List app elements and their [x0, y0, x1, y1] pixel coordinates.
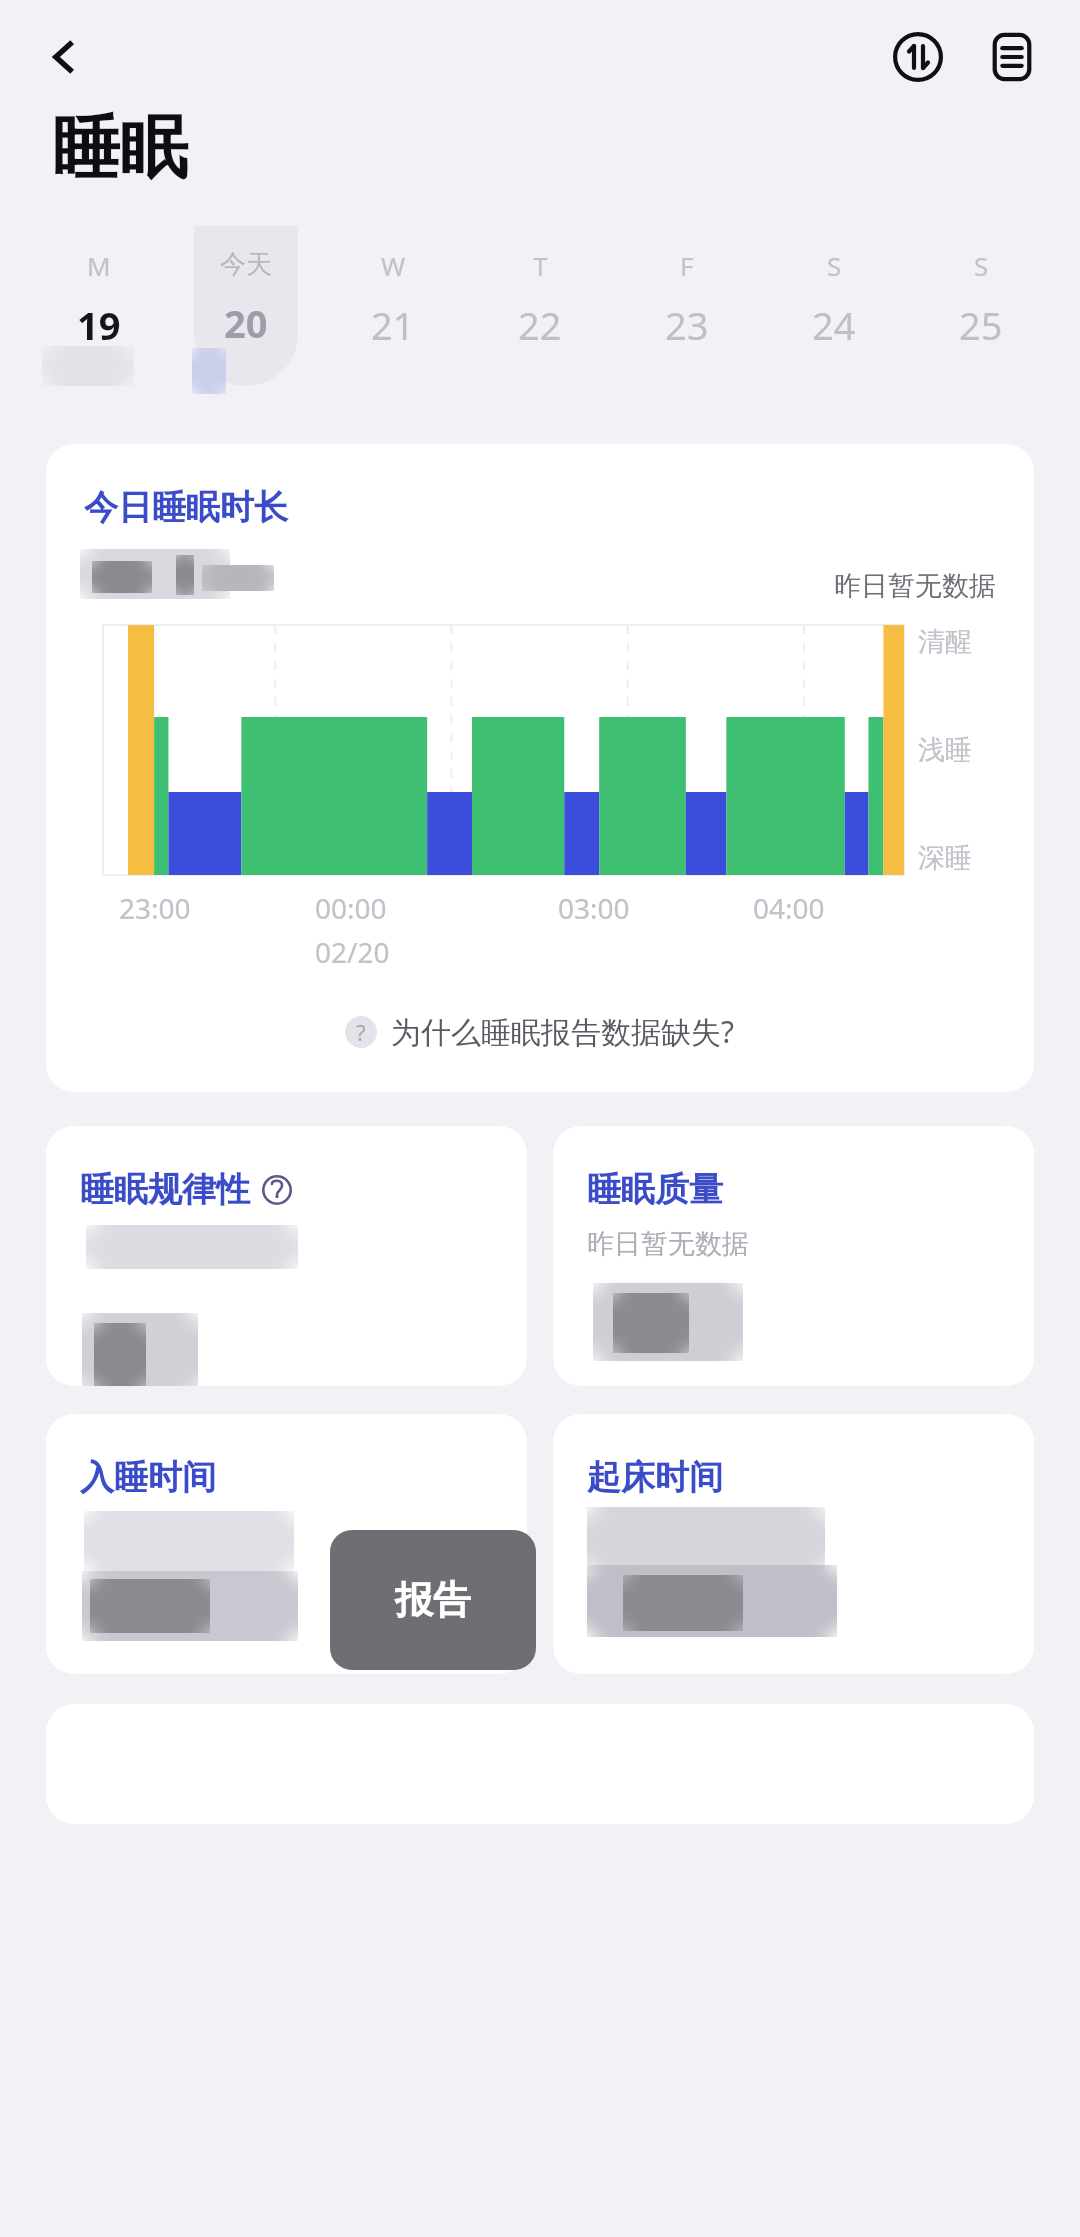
- staticText: 02/20: [315, 933, 390, 971]
- staticText: 今天: [220, 248, 272, 281]
- staticText: 浅睡: [918, 733, 972, 767]
- staticText: 04:00: [753, 889, 825, 927]
- button[interactable]: 入睡时间: [46, 1414, 527, 1674]
- button[interactable]: M: [26, 226, 172, 386]
- staticText: 昨日暂无数据: [834, 569, 996, 603]
- button[interactable]: 睡眠规律性: [46, 1126, 527, 1386]
- staticText: 入睡时间: [80, 1456, 216, 1499]
- staticText: 今日睡眠时长: [84, 486, 288, 529]
- staticText: 19: [77, 299, 121, 351]
- staticText: 23: [665, 299, 709, 351]
- button[interactable]: F: [613, 226, 760, 386]
- staticText: T: [533, 248, 548, 283]
- button[interactable]: 起床时间: [553, 1414, 1034, 1674]
- button[interactable]: Records: [980, 25, 1044, 89]
- staticText: 00:00: [315, 889, 387, 927]
- button[interactable]: Sync: [886, 25, 950, 89]
- button[interactable]: S: [907, 226, 1054, 386]
- staticText: 昨日暂无数据: [587, 1227, 749, 1261]
- staticText: 深睡: [918, 841, 972, 875]
- staticText: 23:00: [119, 889, 191, 927]
- button[interactable]: 今天: [172, 226, 319, 386]
- staticText: M: [87, 248, 111, 283]
- staticText: S: [827, 248, 842, 283]
- staticText: 起床时间: [587, 1456, 723, 1499]
- button[interactable]: S: [760, 226, 907, 386]
- staticText: 24: [812, 299, 856, 351]
- staticText: 21: [371, 299, 415, 351]
- button[interactable]: W: [319, 226, 466, 386]
- staticText: 25: [959, 299, 1003, 351]
- staticText: F: [680, 248, 694, 283]
- button[interactable]: T: [466, 226, 613, 386]
- staticText: 睡眠质量: [587, 1168, 723, 1211]
- staticText: 22: [518, 299, 562, 351]
- button[interactable]: Back: [38, 31, 90, 83]
- button[interactable]: 今日睡眠时长: [46, 444, 1034, 1092]
- staticText: 03:00: [558, 889, 630, 927]
- staticText: 睡眠: [52, 106, 188, 192]
- staticText: ?: [356, 1017, 366, 1047]
- staticText: W: [381, 248, 406, 283]
- staticText: S: [974, 248, 989, 283]
- staticText: 20: [224, 297, 268, 349]
- button[interactable]: 睡眠质量: [553, 1126, 1034, 1386]
- staticText: 为什么睡眠报告数据缺失?: [391, 1011, 735, 1052]
- staticText: 清醒: [918, 625, 972, 659]
- button[interactable]: ?: [46, 1005, 1034, 1058]
- button[interactable]: 报告: [330, 1530, 536, 1670]
- staticText: 睡眠规律性: [80, 1168, 250, 1211]
- staticText: 报告: [395, 1576, 471, 1624]
